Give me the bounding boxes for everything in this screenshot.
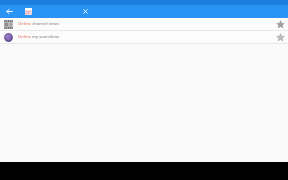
staticText: Online bbox=[18, 34, 31, 40]
button[interactable]: Navigate up bbox=[3, 5, 16, 18]
button[interactable]: Album bbox=[22, 5, 35, 18]
staticText: my soundtrax bbox=[31, 34, 60, 40]
button[interactable]: Favorite bbox=[274, 18, 286, 30]
staticText: channel news bbox=[31, 21, 59, 27]
button[interactable]: Close bbox=[79, 5, 92, 18]
button[interactable]: Favorite bbox=[274, 31, 286, 43]
button[interactable]: Online bbox=[0, 31, 288, 43]
staticText: Online bbox=[18, 21, 31, 27]
button[interactable]: Online bbox=[0, 18, 288, 30]
